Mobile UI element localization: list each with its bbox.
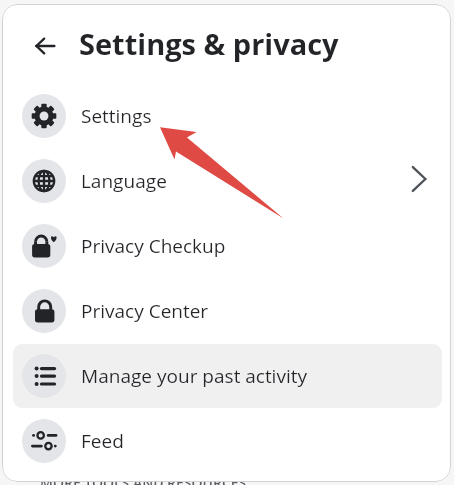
button[interactable]: Privacy Checkup (13, 214, 442, 278)
staticText: MORE TOOLS AND RESOURCES (40, 473, 247, 485)
button[interactable]: Settings (13, 84, 442, 148)
other: Open Language (402, 162, 436, 196)
staticText: Settings & privacy (79, 24, 339, 63)
staticText: Privacy Center (81, 298, 209, 324)
staticText: Settings (81, 103, 152, 129)
staticText: Privacy Checkup (81, 233, 226, 259)
staticText: Language (81, 168, 167, 194)
button[interactable]: Feed (13, 409, 442, 473)
staticText: Feed (81, 428, 124, 454)
button[interactable]: Language (13, 149, 442, 213)
staticText: Manage your past activity (81, 363, 308, 389)
button[interactable]: Manage your past activity (13, 344, 442, 408)
button[interactable]: Back (21, 22, 69, 70)
button[interactable]: Privacy Center (13, 279, 442, 343)
